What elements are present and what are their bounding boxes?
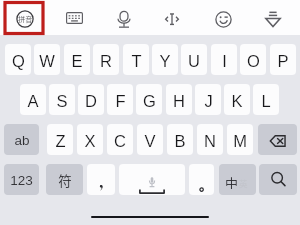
button[interactable]: E: [64, 44, 90, 75]
button[interactable]: Emoji: [207, 3, 239, 35]
staticText: B: [174, 132, 186, 150]
staticText: L: [261, 92, 271, 110]
button[interactable]: U: [181, 44, 207, 75]
button[interactable]: Hide keyboard: [257, 3, 289, 35]
button[interactable]: K: [224, 84, 250, 115]
staticText: T: [131, 52, 142, 70]
staticText: O: [247, 52, 260, 70]
staticText: D: [85, 92, 97, 110]
button[interactable]: Chinese English toggle: [219, 164, 256, 195]
button[interactable]: C: [107, 124, 133, 155]
staticText: X: [84, 132, 96, 150]
button[interactable]: X: [77, 124, 103, 155]
button[interactable]: I: [211, 44, 237, 75]
button[interactable]: F: [107, 84, 133, 115]
button[interactable]: S: [49, 84, 75, 115]
staticText: N: [204, 132, 216, 150]
button[interactable]: ab: [4, 124, 39, 155]
staticText: V: [144, 132, 156, 150]
staticText: 拼音: [18, 14, 33, 24]
button[interactable]: Period: [189, 164, 214, 195]
button[interactable]: Comma: [87, 164, 115, 195]
button[interactable]: T: [123, 44, 149, 75]
staticText: I: [222, 52, 227, 70]
staticText: ab: [14, 133, 30, 148]
button[interactable]: J: [195, 84, 221, 115]
staticText: S: [56, 92, 68, 110]
staticText: 中: [225, 173, 239, 189]
staticText: K: [231, 92, 243, 110]
staticText: M: [233, 132, 247, 150]
staticText: R: [100, 52, 112, 70]
staticText: G: [143, 92, 156, 110]
button[interactable]: Voice input: [108, 3, 140, 35]
button[interactable]: Space: [119, 164, 185, 195]
button[interactable]: Q: [5, 44, 31, 75]
button[interactable]: R: [93, 44, 119, 75]
button[interactable]: L: [253, 84, 279, 115]
button[interactable]: A: [20, 84, 46, 115]
staticText: E: [71, 52, 83, 70]
staticText: A: [27, 92, 39, 110]
button[interactable]: Y: [152, 44, 178, 75]
button[interactable]: 符: [46, 164, 83, 195]
button[interactable]: O: [240, 44, 266, 75]
button[interactable]: Move cursor: [156, 3, 188, 35]
staticText: 123: [10, 173, 33, 188]
staticText: P: [277, 52, 289, 70]
button[interactable]: Backspace: [258, 124, 297, 155]
staticText: W: [39, 52, 55, 70]
staticText: Z: [55, 132, 66, 150]
button[interactable]: B: [167, 124, 193, 155]
staticText: Q: [12, 52, 25, 70]
button[interactable]: M: [227, 124, 253, 155]
staticText: H: [173, 92, 185, 110]
staticText: J: [204, 92, 213, 110]
button[interactable]: 123: [4, 164, 39, 195]
button[interactable]: H: [166, 84, 192, 115]
button[interactable]: Search: [259, 164, 297, 195]
staticText: 符: [58, 170, 72, 190]
button[interactable]: D: [78, 84, 104, 115]
button[interactable]: V: [137, 124, 163, 155]
button[interactable]: W: [34, 44, 60, 75]
button[interactable]: N: [197, 124, 223, 155]
staticText: C: [114, 132, 126, 150]
staticText: Y: [159, 52, 171, 70]
button[interactable]: P: [270, 44, 296, 75]
button[interactable]: Keyboard layout: [58, 2, 90, 34]
button[interactable]: Pinyin input mode: [9, 3, 41, 35]
button[interactable]: G: [136, 84, 162, 115]
button[interactable]: Z: [47, 124, 73, 155]
staticText: F: [115, 92, 126, 110]
staticText: U: [188, 52, 200, 70]
